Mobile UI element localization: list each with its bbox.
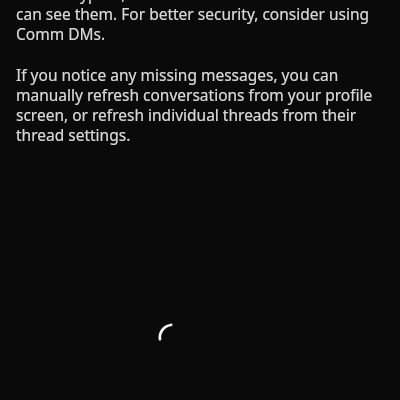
button[interactable]: Loading xyxy=(157,322,188,353)
staticText: end encrypted, which means the Farcaster… xyxy=(16,0,374,44)
button[interactable]: end encrypted, which means the Farcaster… xyxy=(16,0,374,145)
staticText: If you notice any missing messages, you … xyxy=(16,64,374,145)
